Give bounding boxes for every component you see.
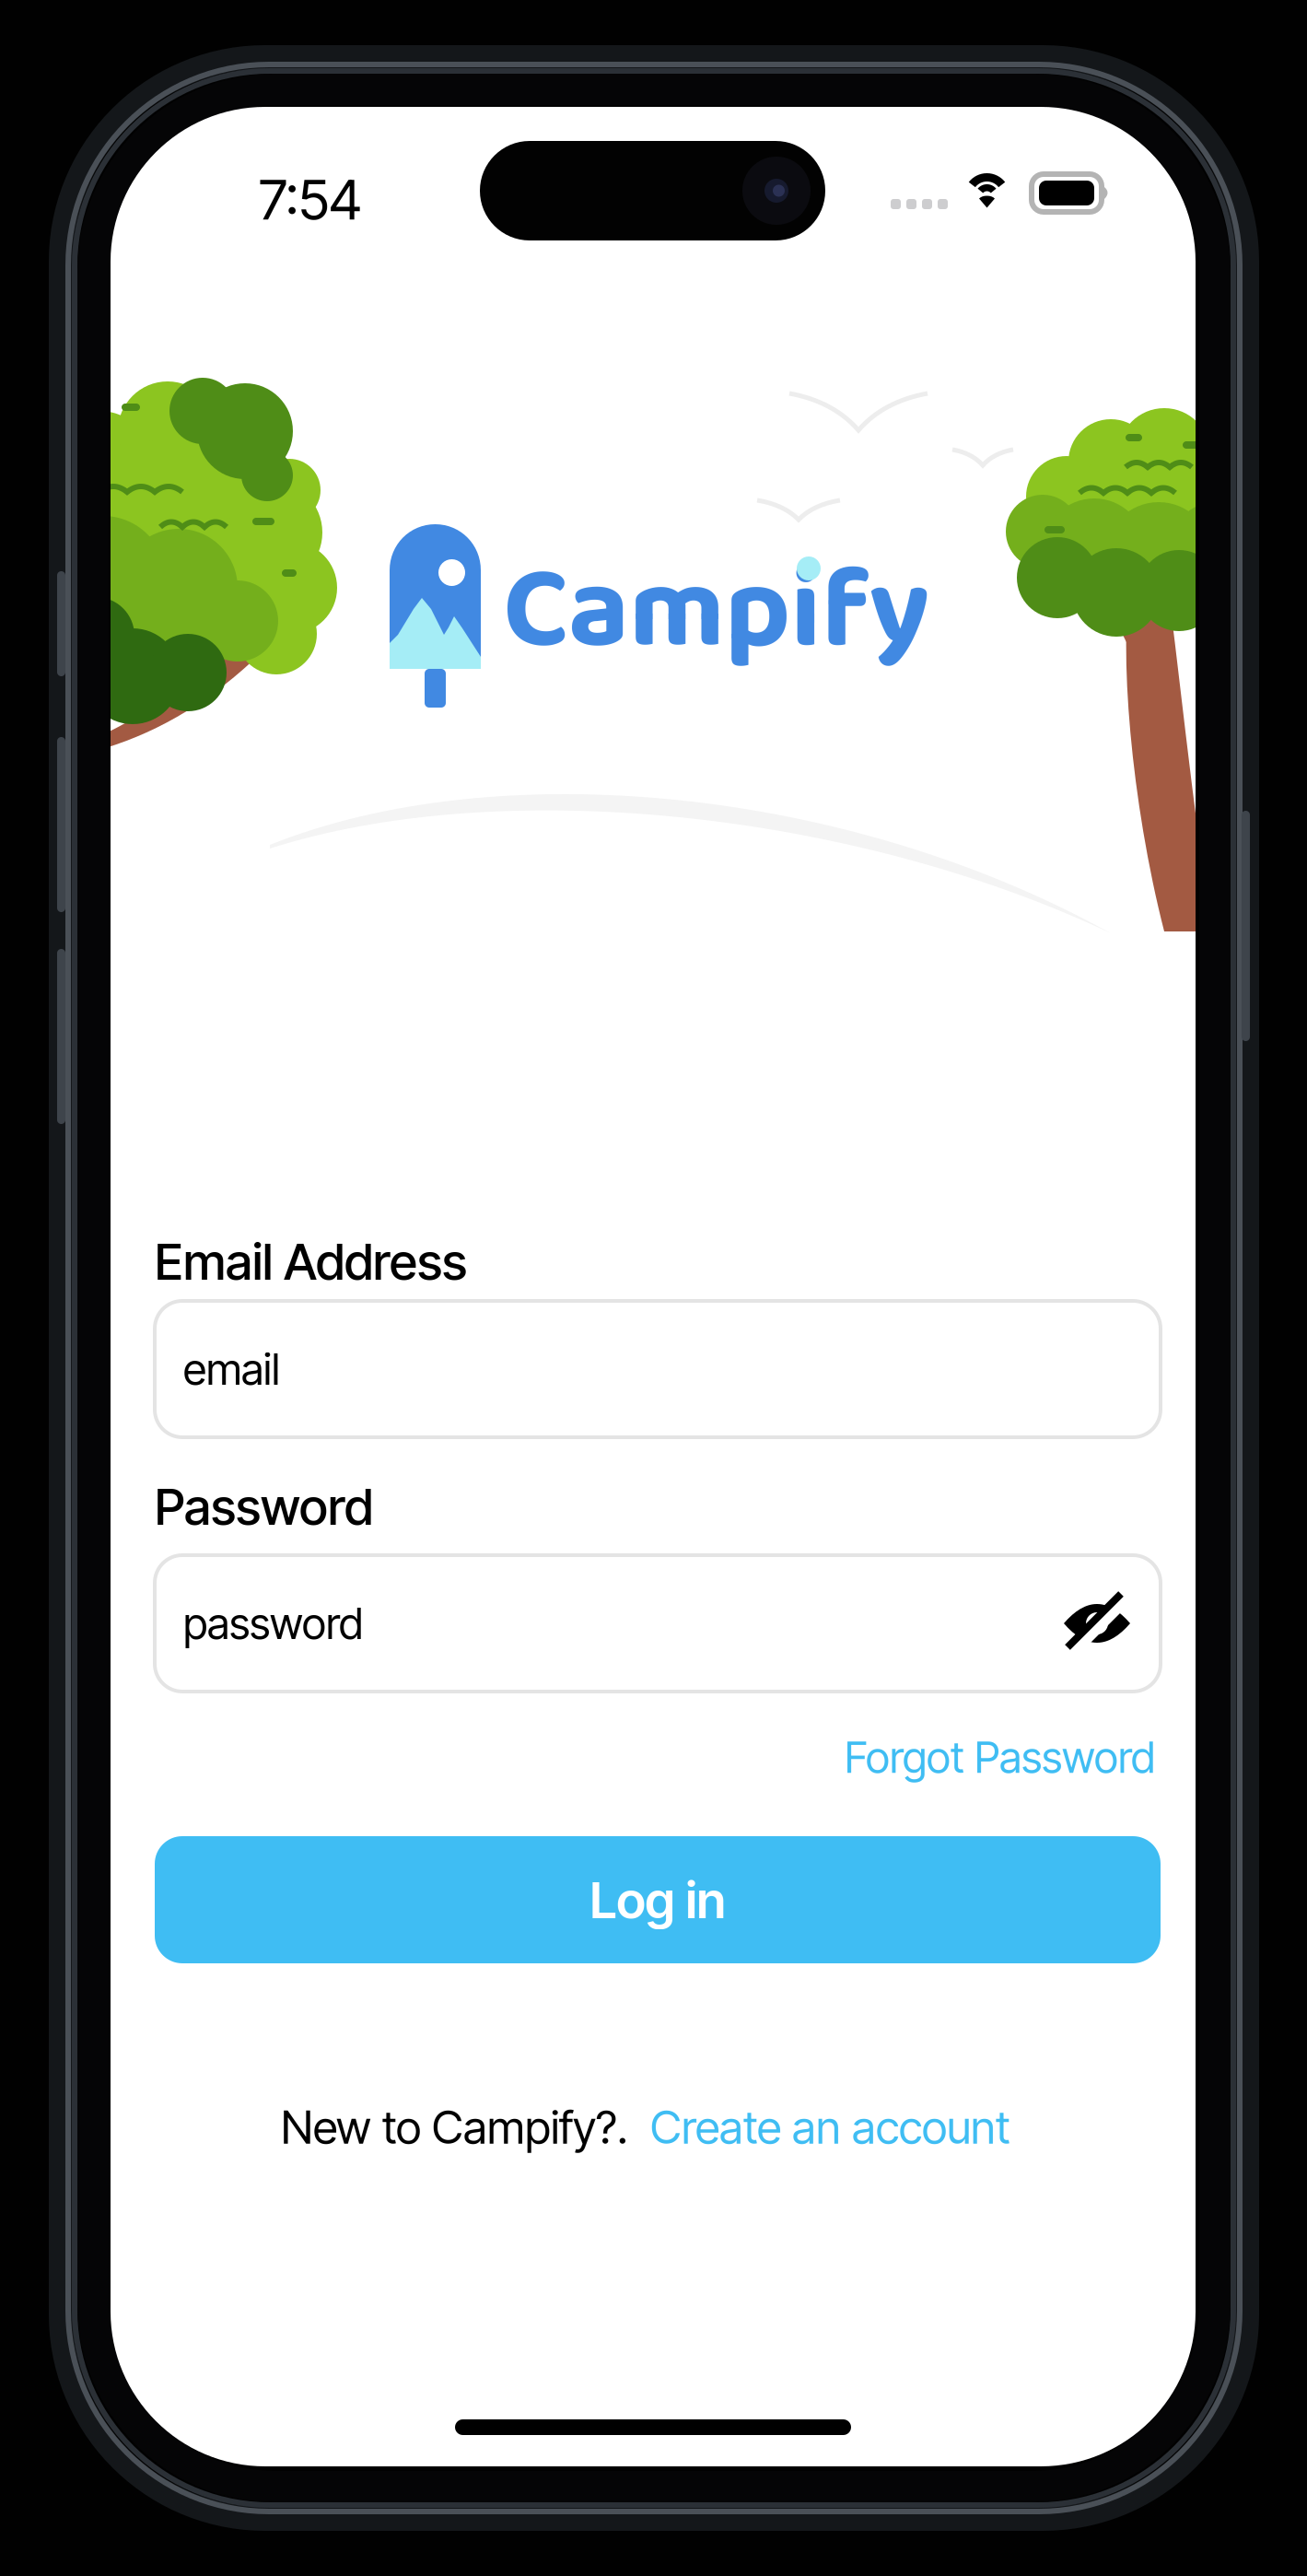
staticText: email — [183, 1343, 280, 1395]
staticText: password — [183, 1597, 363, 1649]
button[interactable]: Create an account — [650, 2100, 1010, 2155]
staticText: Password — [155, 1476, 373, 1537]
button[interactable]: Log in — [155, 1836, 1161, 1963]
button[interactable]: Forgot Password — [839, 1726, 1161, 1789]
button[interactable]: Show password — [1064, 1599, 1130, 1647]
staticText: Create an account — [650, 2100, 1010, 2155]
staticText: Forgot Password — [845, 1731, 1155, 1783]
staticText: New to Campify?. — [281, 2100, 628, 2155]
staticText: Log in — [590, 1869, 725, 1930]
staticText: 7:54 — [259, 166, 362, 233]
staticText: Campify — [503, 521, 929, 704]
staticText: Email Address — [155, 1231, 467, 1292]
